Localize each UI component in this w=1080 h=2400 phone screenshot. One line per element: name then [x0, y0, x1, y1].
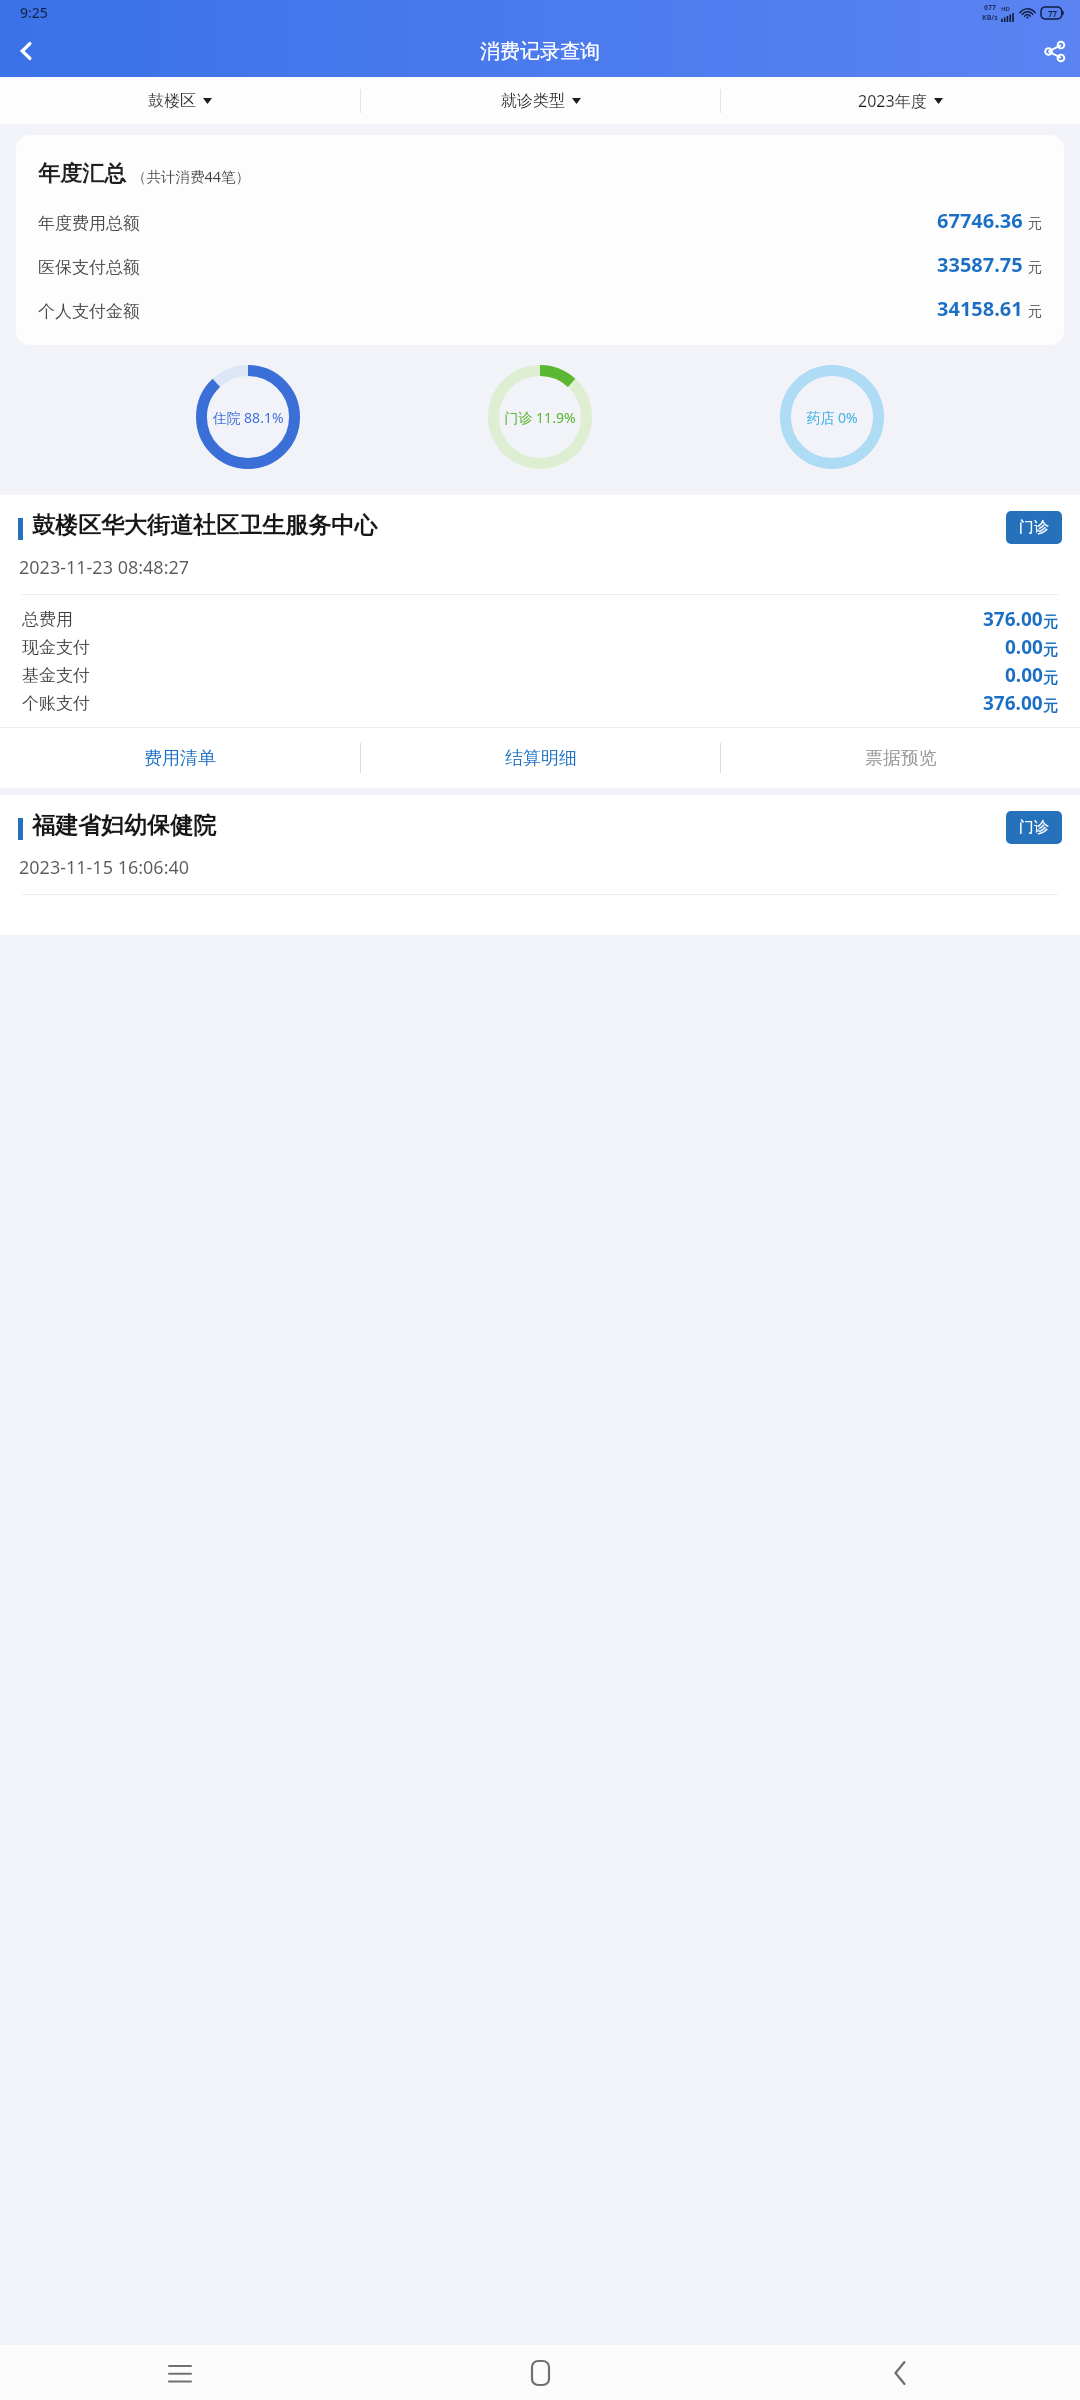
staticText: 福建省妇幼保健院	[32, 811, 992, 840]
button[interactable]: 费用清单	[0, 728, 360, 788]
button[interactable]: Back	[720, 2345, 1080, 2400]
button[interactable]: 就诊类型	[361, 77, 720, 124]
button[interactable]: Recent apps	[0, 2345, 360, 2400]
staticText: 票据预览	[865, 747, 937, 770]
button[interactable]: 2023年度	[721, 77, 1080, 124]
staticText: 就诊类型	[501, 91, 565, 111]
staticText: 0.00	[1005, 662, 1043, 688]
staticText: 医保支付总额	[38, 257, 140, 278]
button[interactable]: Back	[0, 25, 52, 77]
button[interactable]: Share	[1028, 25, 1080, 77]
staticText: HD	[1001, 5, 1010, 13]
button[interactable]: 福建省妇幼保健院	[0, 795, 1080, 935]
button[interactable]: 结算明细	[361, 728, 720, 788]
staticText: KB/s	[982, 13, 998, 23]
staticText: 2023年度	[858, 90, 927, 112]
staticText: 元	[1043, 641, 1058, 660]
staticText: 基金支付	[22, 665, 90, 686]
button[interactable]: 鼓楼区华大街道社区卫生服务中心	[0, 495, 1080, 788]
staticText: 元	[1043, 613, 1058, 632]
button[interactable]: 门诊	[1006, 511, 1062, 544]
staticText: 67746.36	[937, 207, 1023, 234]
staticText: 门诊	[1019, 518, 1049, 537]
staticText: 消费记录查询	[480, 39, 600, 64]
staticText: 元	[1028, 303, 1042, 321]
staticText: 376.00	[983, 690, 1043, 716]
staticText: 结算明细	[505, 747, 577, 770]
button[interactable]: 药店 0%	[780, 365, 884, 469]
staticText: 个账支付	[22, 693, 90, 714]
staticText: 住院 88.1%	[212, 408, 284, 427]
staticText: 门诊 11.9%	[504, 408, 576, 427]
staticText: 个人支付金额	[38, 301, 140, 322]
staticText: 费用清单	[144, 747, 216, 770]
staticText: 鼓楼区华大街道社区卫生服务中心	[32, 511, 992, 540]
staticText: 现金支付	[22, 637, 90, 658]
button[interactable]: 住院 88.1%	[196, 365, 300, 469]
staticText: 元	[1028, 215, 1042, 233]
staticText: 门诊	[1019, 818, 1049, 837]
staticText: 77	[1048, 8, 1058, 19]
staticText: 元	[1043, 669, 1058, 688]
button[interactable]: 年度汇总	[16, 135, 1064, 345]
staticText: 34158.61	[937, 295, 1023, 322]
button[interactable]: 票据预览	[721, 728, 1080, 788]
staticText: （共计消费44笔）	[132, 166, 251, 186]
staticText: 元	[1028, 259, 1042, 277]
staticText: 677	[984, 3, 997, 13]
staticText: 总费用	[22, 609, 73, 630]
button[interactable]: 门诊 11.9%	[488, 365, 592, 469]
staticText: 33587.75	[937, 251, 1023, 278]
button[interactable]: 门诊	[1006, 811, 1062, 844]
staticText: 2023-11-15 16:06:40	[19, 855, 190, 880]
staticText: 0.00	[1005, 634, 1043, 660]
button[interactable]: Home	[360, 2345, 720, 2400]
staticText: 2023-11-23 08:48:27	[19, 555, 190, 580]
staticText: 年度费用总额	[38, 213, 140, 234]
staticText: 元	[1043, 697, 1058, 716]
staticText: 药店 0%	[806, 408, 858, 427]
staticText: 年度汇总	[38, 160, 126, 188]
staticText: 376.00	[983, 606, 1043, 632]
staticText: 9:25	[20, 3, 48, 22]
button[interactable]: 鼓楼区	[0, 77, 360, 124]
staticText: 鼓楼区	[148, 91, 196, 111]
